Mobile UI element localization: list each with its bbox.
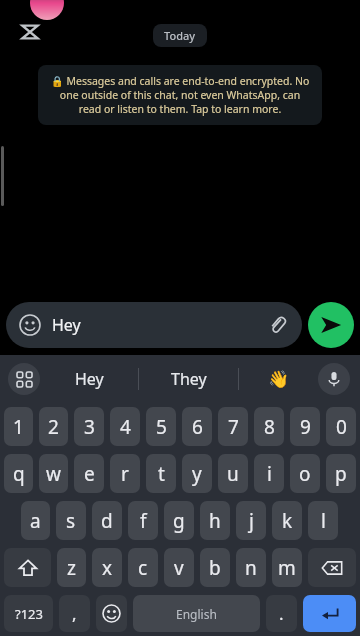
staticText: Hey (75, 368, 104, 390)
button[interactable]: Hey (40, 355, 138, 403)
staticText: 7 (228, 414, 239, 440)
button[interactable]: 3 (74, 407, 104, 446)
button[interactable]: i (254, 454, 284, 493)
button[interactable]: t (146, 454, 176, 493)
button[interactable]: . (266, 595, 297, 632)
staticText: l (321, 508, 326, 534)
staticText: e (84, 461, 95, 487)
staticText: 0 (336, 414, 347, 440)
button[interactable]: a (21, 501, 50, 540)
staticText: r (121, 461, 129, 487)
staticText: k (282, 508, 293, 534)
staticText: Today (164, 28, 196, 43)
button[interactable]: p (326, 454, 356, 493)
button[interactable]: ?123 (4, 595, 53, 632)
button[interactable]: j (236, 501, 266, 540)
staticText: p (335, 461, 347, 487)
button[interactable]: g (164, 501, 194, 540)
button[interactable]: 🔒 Messages and calls are end-to-end encr… (38, 65, 322, 125)
button[interactable]: 1 (4, 407, 33, 446)
staticText: b (209, 555, 221, 581)
button[interactable]: Emoji keyboard (96, 595, 127, 632)
button[interactable]: Voice input (318, 363, 350, 395)
staticText: d (101, 508, 113, 534)
staticText: u (227, 461, 239, 487)
staticText: a (30, 508, 41, 534)
button[interactable]: 0 (326, 407, 356, 446)
button[interactable]: u (218, 454, 248, 493)
staticText: c (138, 555, 148, 581)
button[interactable]: 7 (218, 407, 248, 446)
button[interactable]: h (200, 501, 230, 540)
button[interactable]: q (4, 454, 33, 493)
staticText: f (140, 508, 147, 534)
staticText: 4 (120, 414, 131, 440)
button[interactable]: They (139, 355, 238, 403)
staticText: t (158, 461, 165, 487)
staticText: 6 (192, 414, 203, 440)
button[interactable]: b (200, 548, 230, 587)
staticText: 2 (48, 414, 59, 440)
button[interactable]: s (56, 501, 86, 540)
button[interactable]: 6 (182, 407, 212, 446)
button[interactable]: Enter (303, 595, 356, 632)
button[interactable]: Attach (264, 312, 290, 338)
button[interactable]: 👋 (239, 355, 318, 403)
button[interactable]: l (308, 501, 338, 540)
staticText: English (176, 606, 217, 622)
button[interactable]: Emoji (18, 313, 42, 337)
button[interactable]: Toolbar (8, 363, 40, 395)
button[interactable]: n (236, 548, 266, 587)
button[interactable]: 5 (146, 407, 176, 446)
staticText: h (209, 508, 221, 534)
button[interactable]: e (74, 454, 104, 493)
button[interactable]: m (272, 548, 302, 587)
button[interactable]: f (128, 501, 158, 540)
staticText: Hey (52, 314, 81, 336)
staticText: v (174, 555, 184, 581)
button[interactable]: k (272, 501, 302, 540)
button[interactable]: 9 (290, 407, 320, 446)
staticText: i (267, 461, 272, 487)
staticText: q (13, 461, 25, 487)
staticText: 🔒 Messages and calls are end-to-end encr… (50, 74, 310, 116)
staticText: . (279, 602, 284, 625)
staticText: x (102, 555, 113, 581)
staticText: z (67, 555, 76, 581)
button[interactable]: 2 (39, 407, 68, 446)
staticText: m (278, 555, 296, 581)
button[interactable]: o (290, 454, 320, 493)
button[interactable]: 8 (254, 407, 284, 446)
button[interactable]: d (92, 501, 122, 540)
button[interactable]: English (133, 595, 260, 632)
staticText: , (72, 602, 77, 625)
button[interactable]: 4 (110, 407, 140, 446)
button[interactable]: w (39, 454, 68, 493)
button[interactable]: y (182, 454, 212, 493)
button[interactable]: c (128, 548, 158, 587)
button[interactable]: , (59, 595, 90, 632)
button[interactable]: Backspace (308, 548, 356, 587)
staticText: o (299, 461, 311, 487)
staticText: 3 (84, 414, 95, 440)
staticText: 👋 (268, 369, 290, 389)
button[interactable]: Today (164, 28, 196, 43)
button[interactable]: Shift (4, 548, 51, 587)
staticText: j (249, 508, 254, 534)
staticText: s (66, 508, 76, 534)
button[interactable]: r (110, 454, 140, 493)
staticText: 5 (156, 414, 167, 440)
button[interactable]: x (92, 548, 122, 587)
staticText: w (46, 461, 61, 487)
staticText: 8 (264, 414, 275, 440)
button[interactable]: Emoji (6, 302, 302, 348)
button[interactable]: Send (308, 302, 354, 348)
staticText: g (173, 508, 185, 534)
staticText: n (245, 555, 257, 581)
button[interactable]: z (57, 548, 86, 587)
staticText: y (192, 461, 202, 487)
staticText: They (171, 368, 207, 390)
staticText: ?123 (15, 605, 43, 623)
button[interactable]: v (164, 548, 194, 587)
staticText: 1 (13, 414, 24, 440)
